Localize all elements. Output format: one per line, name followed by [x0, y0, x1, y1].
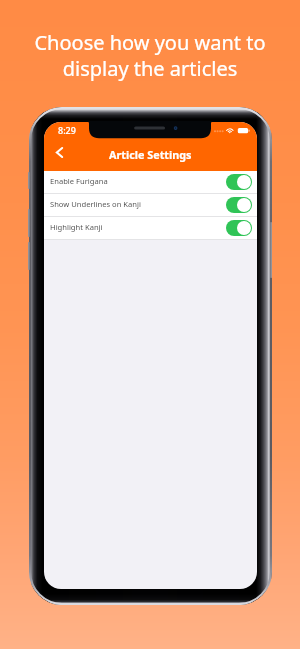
- staticText: 8:29: [58, 124, 76, 136]
- staticText: Show Underlines on Kanji: [50, 199, 141, 209]
- staticText: Highlight Kanji: [50, 222, 103, 232]
- staticText: Choose how you want to display the artic…: [0, 29, 300, 81]
- button[interactable]: Show Underlines on Kanji: [44, 194, 257, 217]
- button[interactable]: Highlight Kanji: [44, 217, 257, 240]
- button[interactable]: Enable Furigana: [44, 171, 257, 194]
- staticText: Enable Furigana: [50, 176, 108, 186]
- button[interactable]: Back: [47, 142, 71, 162]
- staticText: Article Settings: [109, 147, 192, 162]
